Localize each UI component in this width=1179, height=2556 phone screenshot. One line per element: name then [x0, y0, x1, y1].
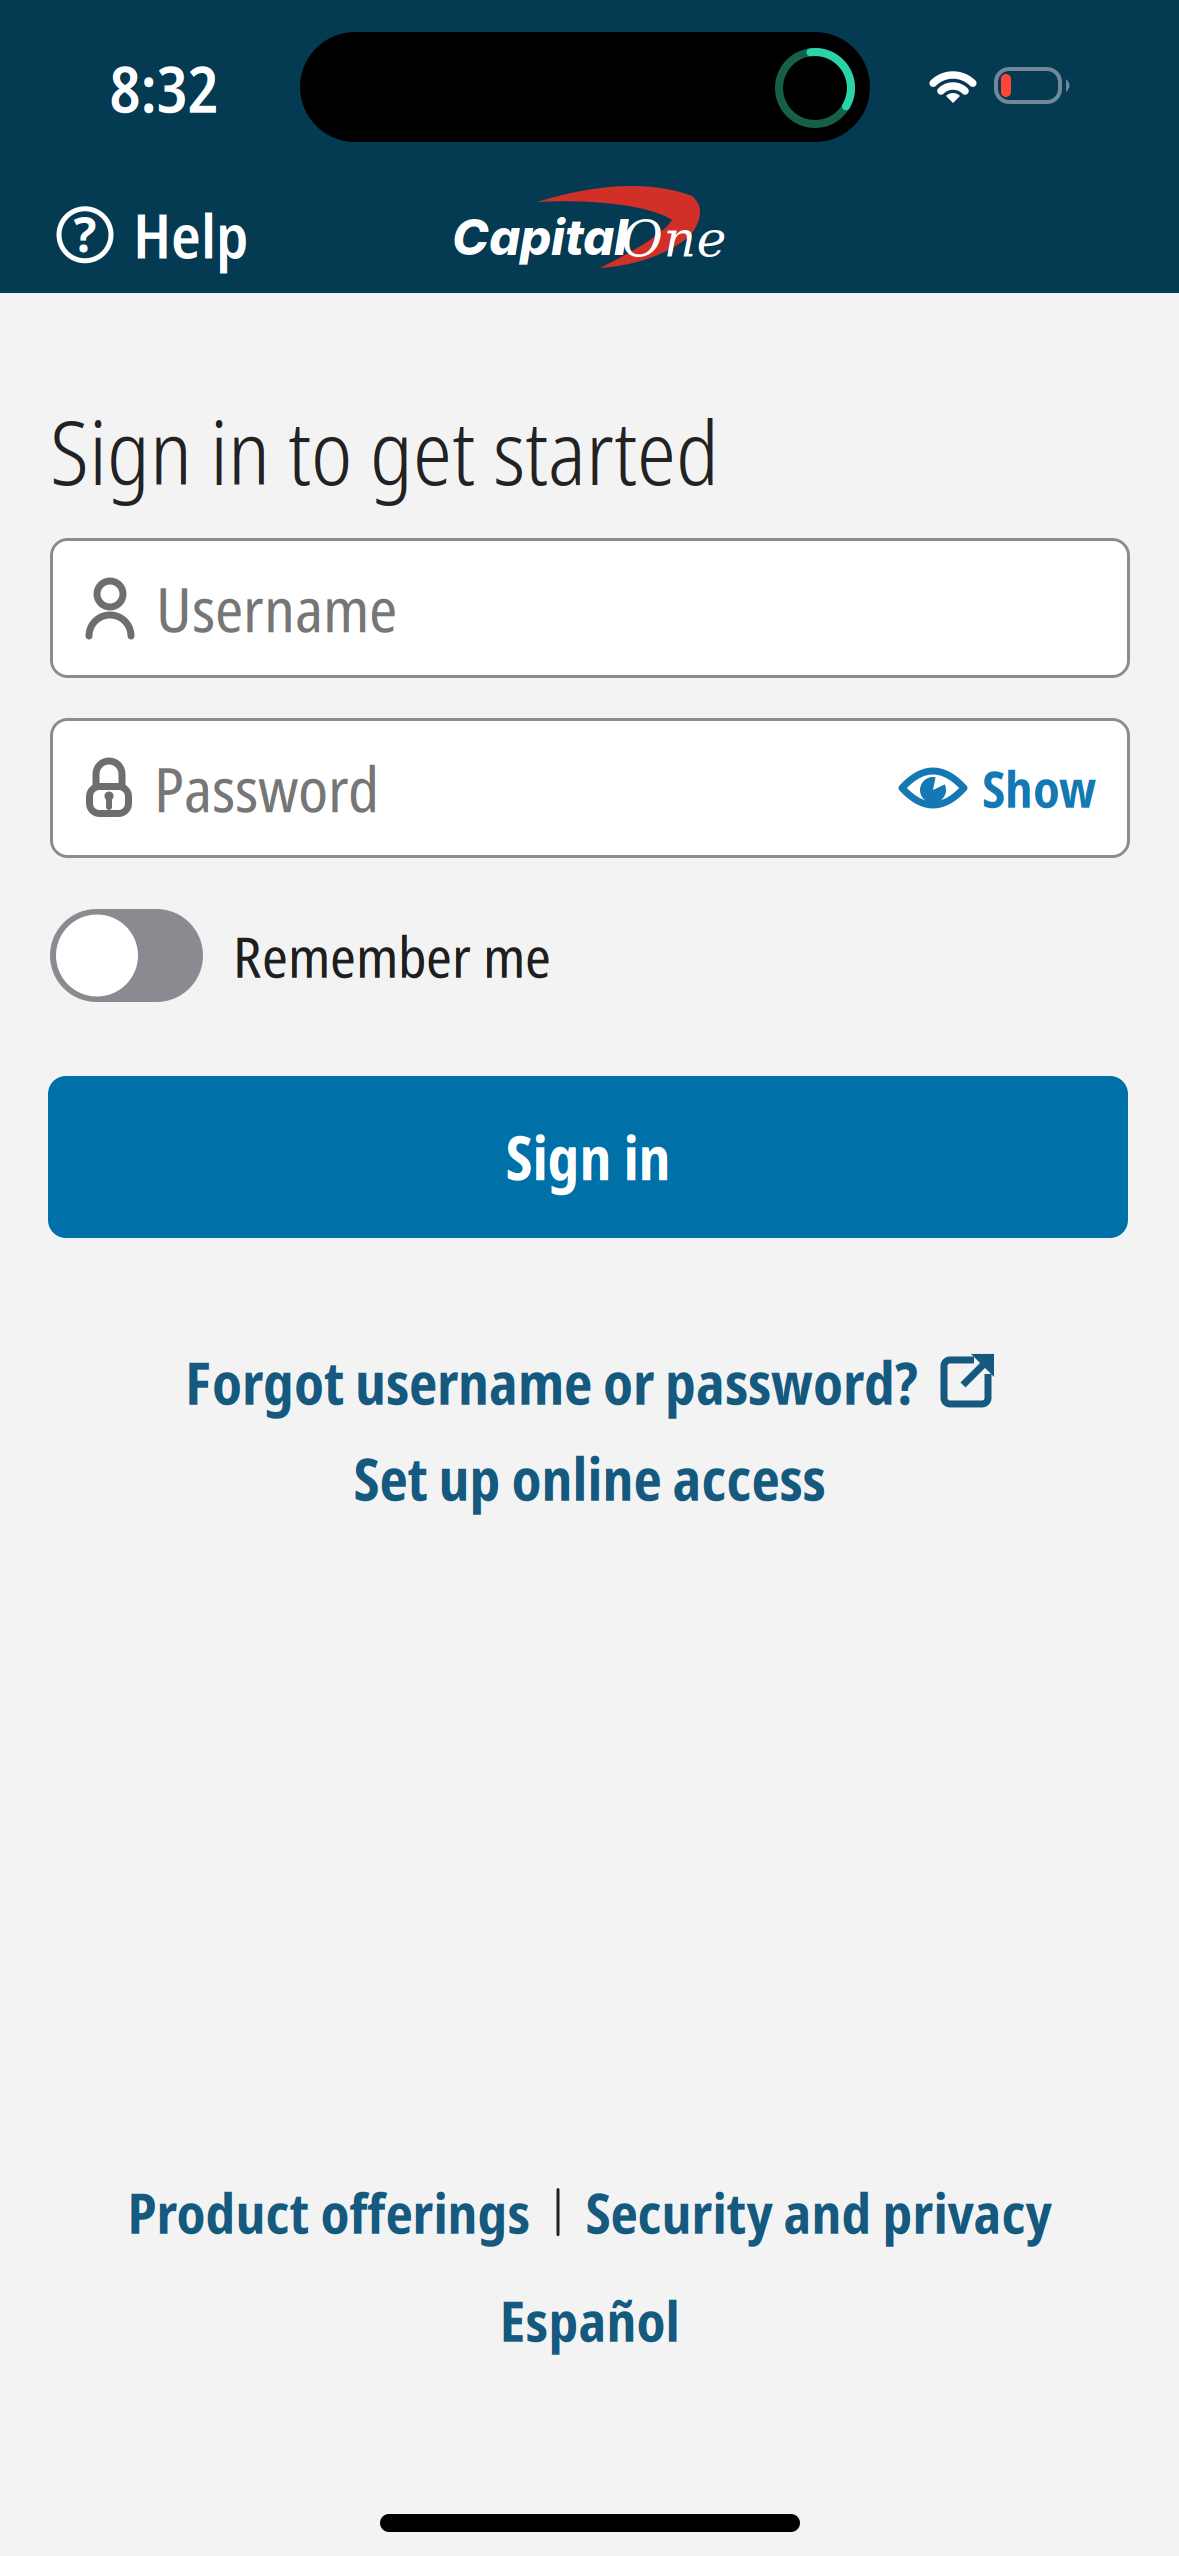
staticText: Capital	[452, 207, 628, 267]
staticText: ?	[73, 202, 96, 266]
staticText: Security and privacy	[585, 2174, 1051, 2250]
staticText: Username	[156, 565, 397, 651]
staticText: Sign in to get started	[50, 391, 719, 511]
button[interactable]: Remember me	[50, 909, 551, 1002]
staticText: 8:32	[109, 44, 218, 132]
staticText: One	[621, 209, 726, 268]
staticText: Product offerings	[127, 2174, 530, 2250]
staticText: Remember me	[233, 916, 551, 995]
button[interactable]: Product offerings	[127, 2174, 530, 2250]
button[interactable]: Security and privacy	[585, 2174, 1051, 2250]
button[interactable]: Password	[50, 718, 1130, 858]
button[interactable]: Set up online access	[353, 1438, 825, 1518]
staticText: Forgot username or password?	[185, 1342, 918, 1422]
staticText: Español	[499, 2282, 679, 2358]
staticText: Password	[154, 745, 379, 831]
button[interactable]: Forgot username or password?	[185, 1342, 994, 1422]
button[interactable]: Español	[499, 2282, 679, 2358]
button[interactable]: Help	[55, 193, 248, 276]
button[interactable]: Username	[50, 538, 1130, 678]
button[interactable]: Sign in	[48, 1076, 1128, 1238]
staticText: Sign in	[505, 1116, 670, 1198]
staticText: Set up online access	[353, 1438, 825, 1518]
staticText: Help	[133, 193, 248, 276]
staticText: Show	[982, 753, 1096, 822]
button[interactable]: Show password	[900, 753, 1096, 822]
